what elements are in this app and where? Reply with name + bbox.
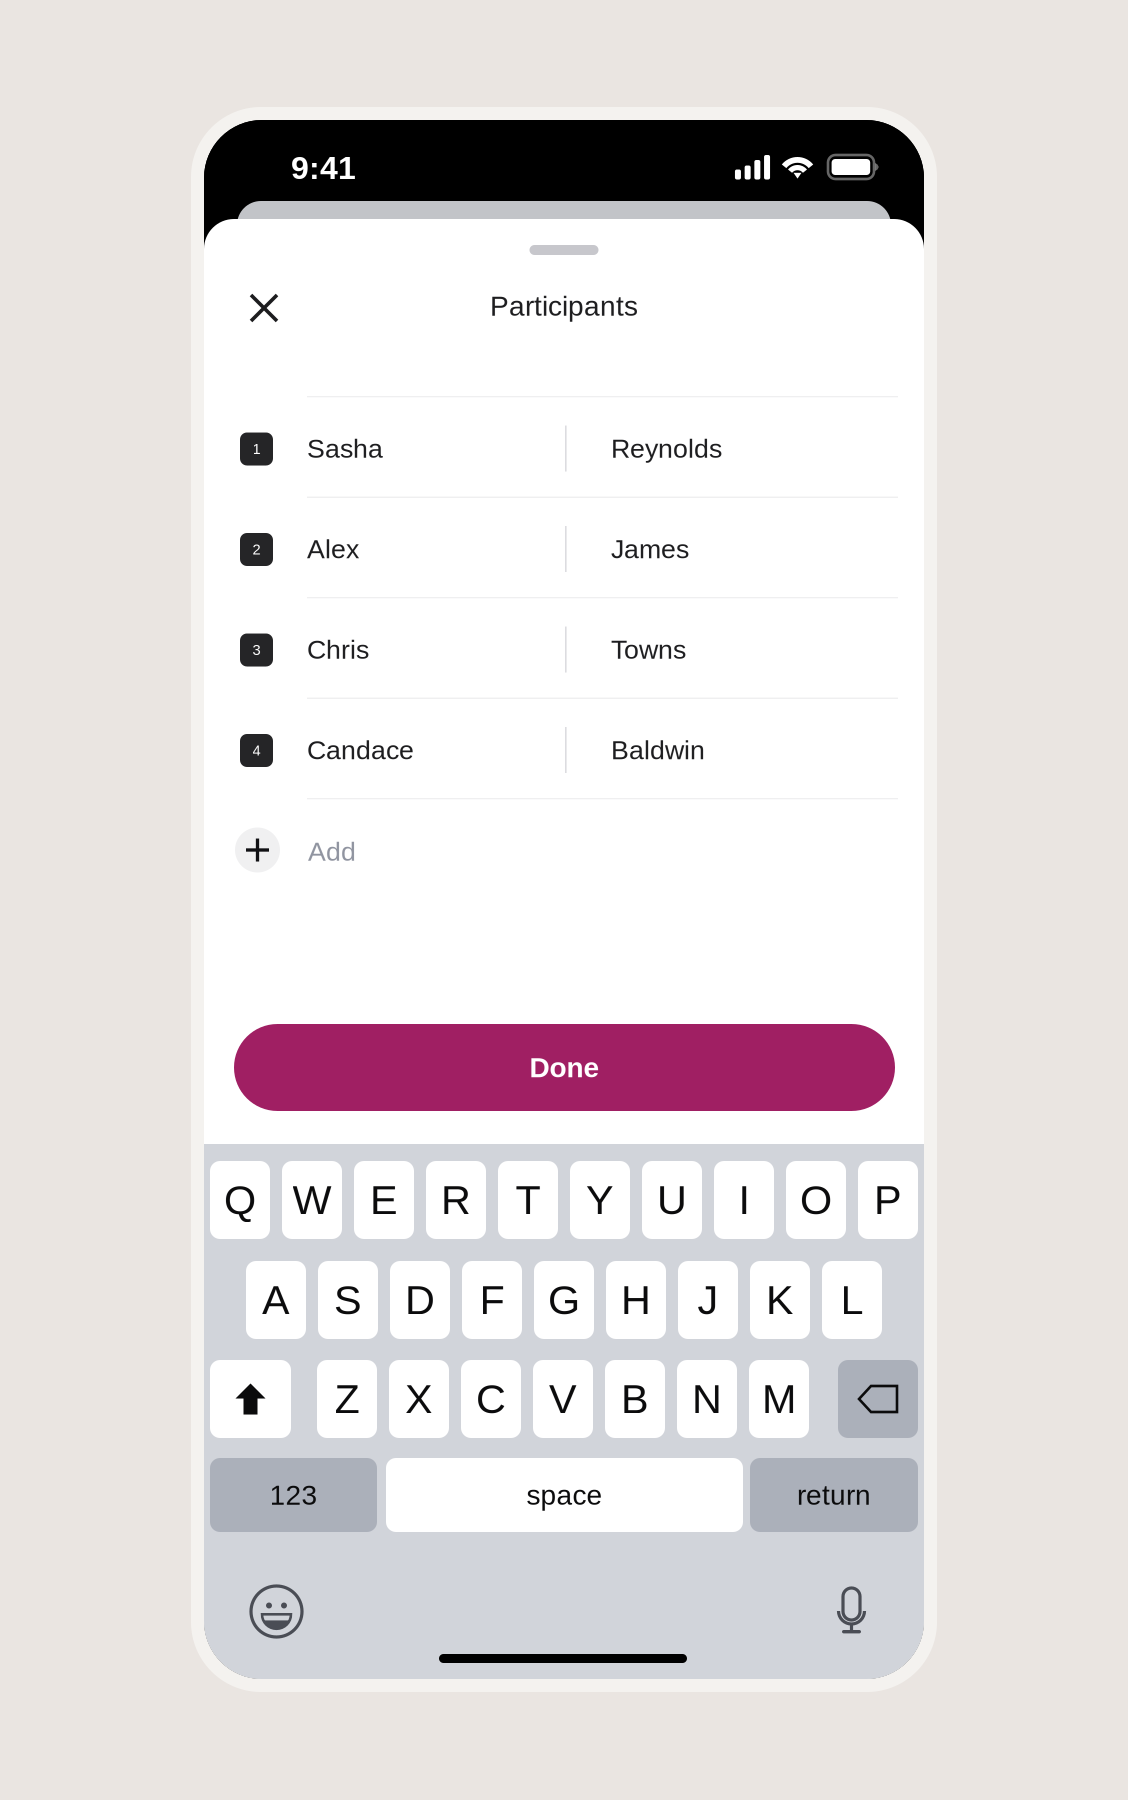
button[interactable]: Close xyxy=(235,280,293,336)
button[interactable]: space xyxy=(386,1458,743,1532)
button[interactable]: Done xyxy=(234,1024,895,1111)
staticText: D xyxy=(405,1277,435,1323)
button[interactable]: W xyxy=(282,1161,342,1239)
staticText: Y xyxy=(586,1177,614,1223)
staticText: G xyxy=(548,1277,580,1323)
button[interactable]: J xyxy=(678,1261,738,1339)
staticText: P xyxy=(874,1177,902,1223)
staticText: James xyxy=(611,534,689,564)
staticText: V xyxy=(549,1376,577,1422)
button[interactable]: F xyxy=(462,1261,522,1339)
staticText: N xyxy=(692,1376,722,1422)
button[interactable]: R xyxy=(426,1161,486,1239)
staticText: Z xyxy=(334,1376,359,1422)
button[interactable]: Q xyxy=(210,1161,270,1239)
button[interactable]: S xyxy=(318,1261,378,1339)
staticText: K xyxy=(766,1277,794,1323)
staticText: Towns xyxy=(611,634,686,664)
staticText: 4 xyxy=(252,742,260,759)
staticText: A xyxy=(262,1277,290,1323)
staticText: Q xyxy=(224,1177,256,1223)
button[interactable]: M xyxy=(749,1360,809,1438)
staticText: E xyxy=(370,1177,398,1223)
staticText: space xyxy=(526,1479,602,1511)
staticText: B xyxy=(621,1376,649,1422)
staticText: O xyxy=(800,1177,832,1223)
staticText: Alex xyxy=(307,534,359,564)
staticText: Sasha xyxy=(307,433,383,463)
button[interactable]: 4 xyxy=(204,699,924,798)
button[interactable]: T xyxy=(498,1161,558,1239)
staticText: M xyxy=(762,1376,796,1422)
staticText: Reynolds xyxy=(611,433,722,463)
staticText: 2 xyxy=(252,541,260,558)
button[interactable]: Shift xyxy=(210,1360,291,1438)
button[interactable]: return xyxy=(750,1458,918,1532)
button[interactable]: H xyxy=(606,1261,666,1339)
staticText: Baldwin xyxy=(611,735,705,765)
button[interactable]: Delete xyxy=(838,1360,918,1438)
button[interactable]: Z xyxy=(317,1360,377,1438)
button[interactable]: C xyxy=(461,1360,521,1438)
staticText: Participants xyxy=(490,290,638,322)
button[interactable]: V xyxy=(533,1360,593,1438)
button[interactable]: O xyxy=(786,1161,846,1239)
button[interactable]: P xyxy=(858,1161,918,1239)
staticText: S xyxy=(334,1277,362,1323)
button[interactable]: 3 xyxy=(204,598,924,697)
staticText: U xyxy=(657,1177,687,1223)
staticText: I xyxy=(738,1177,749,1223)
button[interactable]: Y xyxy=(570,1161,630,1239)
button[interactable]: D xyxy=(390,1261,450,1339)
button[interactable]: 123 xyxy=(210,1458,377,1532)
staticText: return xyxy=(797,1479,871,1511)
staticText: C xyxy=(476,1376,506,1422)
staticText: H xyxy=(621,1277,651,1323)
button[interactable]: I xyxy=(714,1161,774,1239)
button[interactable]: A xyxy=(246,1261,306,1339)
staticText: Add xyxy=(308,836,356,866)
staticText: 9:41 xyxy=(291,150,356,186)
staticText: L xyxy=(840,1277,863,1323)
staticText: R xyxy=(441,1177,471,1223)
button[interactable]: U xyxy=(642,1161,702,1239)
button[interactable]: 2 xyxy=(204,498,924,597)
staticText: Candace xyxy=(307,735,414,765)
staticText: F xyxy=(479,1277,504,1323)
staticText: Chris xyxy=(307,634,369,664)
button[interactable]: Emoji xyxy=(251,1586,302,1637)
button[interactable]: L xyxy=(822,1261,882,1339)
staticText: 1 xyxy=(252,441,260,457)
staticText: W xyxy=(292,1177,331,1223)
button[interactable]: N xyxy=(677,1360,737,1438)
button[interactable]: K xyxy=(750,1261,810,1339)
button[interactable]: 1 xyxy=(204,397,924,496)
staticText: Done xyxy=(529,1052,599,1083)
button[interactable]: G xyxy=(534,1261,594,1339)
staticText: J xyxy=(697,1277,718,1323)
button[interactable]: B xyxy=(605,1360,665,1438)
button[interactable]: Add xyxy=(204,799,924,885)
staticText: 123 xyxy=(269,1479,317,1511)
staticText: 3 xyxy=(252,642,260,658)
button[interactable]: Dictation xyxy=(837,1586,866,1636)
button[interactable]: E xyxy=(354,1161,414,1239)
staticText: X xyxy=(405,1376,433,1422)
staticText: T xyxy=(515,1177,540,1223)
button[interactable]: X xyxy=(389,1360,449,1438)
